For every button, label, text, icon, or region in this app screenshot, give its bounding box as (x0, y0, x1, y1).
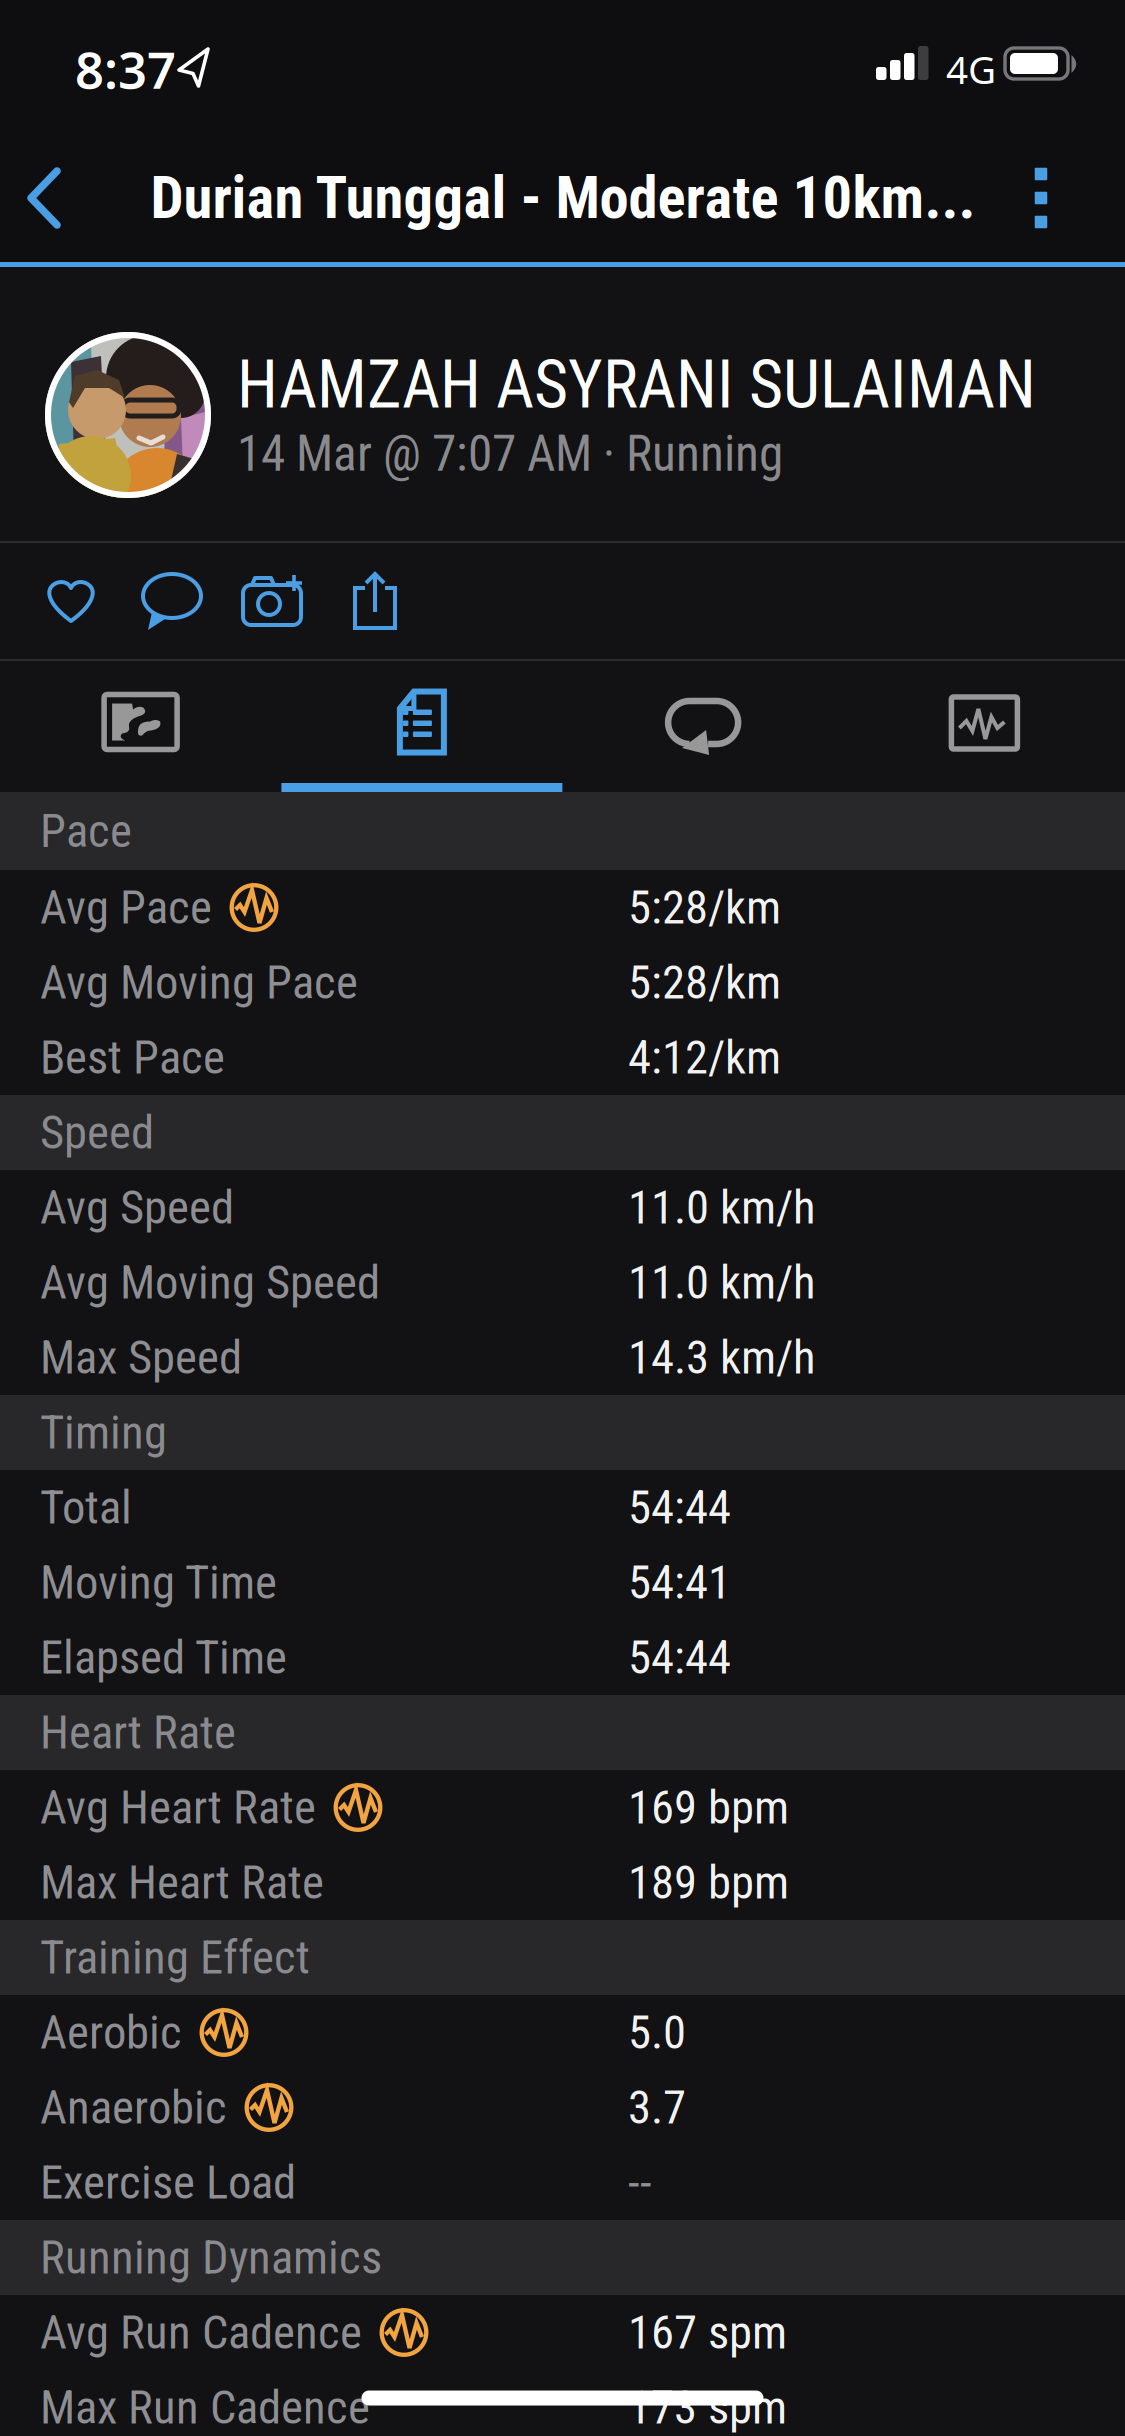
staticText: -- (628, 2155, 652, 2210)
staticText: Avg Heart Rate (40, 1780, 316, 1835)
staticText: Pace (40, 804, 132, 858)
staticText: Avg Moving Speed (40, 1255, 380, 1310)
button[interactable]: Like (23, 543, 118, 659)
staticText: 189 bpm (628, 1855, 789, 1910)
staticText: 54:41 (628, 1555, 731, 1610)
button[interactable]: Share (327, 543, 422, 659)
staticText: Heart Rate (40, 1705, 236, 1760)
staticText: Training Effect (40, 1930, 310, 1985)
staticText: 54:44 (628, 1630, 731, 1685)
staticText: Max Heart Rate (40, 1855, 324, 1910)
staticText: 11.0 km/h (628, 1255, 816, 1310)
staticText: 11.0 km/h (628, 1180, 816, 1235)
staticText: 54:44 (628, 1480, 731, 1535)
button[interactable]: Back (0, 132, 90, 262)
staticText: Anaerobic (40, 2080, 227, 2135)
staticText: Aerobic (40, 2005, 182, 2060)
staticText: Timing (40, 1405, 167, 1460)
staticText: 5.0 (628, 2005, 686, 2060)
staticText: Avg Speed (40, 1180, 234, 1235)
staticText: Total (40, 1480, 132, 1535)
button[interactable]: Stats (281, 661, 562, 783)
staticText: Avg Moving Pace (40, 955, 358, 1010)
staticText: 4G (946, 43, 996, 95)
staticText: Max Run Cadence (40, 2380, 370, 2435)
button[interactable]: Charts (844, 662, 1125, 784)
staticText: 167 spm (628, 2305, 787, 2360)
staticText: 5:28/km (628, 880, 781, 935)
staticText: 5:28/km (628, 955, 781, 1010)
staticText: Avg Pace (40, 880, 212, 935)
staticText: 173 spm (628, 2380, 787, 2435)
staticText: Running Dynamics (40, 2230, 382, 2285)
button[interactable]: Add photo (226, 543, 321, 659)
staticText: Exercise Load (40, 2155, 296, 2210)
staticText: 8:37 (75, 35, 176, 103)
staticText: Max Speed (40, 1330, 242, 1385)
staticText: Speed (40, 1105, 154, 1160)
staticText: Moving Time (40, 1555, 277, 1610)
staticText: Durian Tunggal - Moderate 10km... (150, 164, 975, 232)
button[interactable]: Comment (124, 543, 219, 659)
staticText: 14.3 km/h (628, 1330, 816, 1385)
button[interactable]: More options (1001, 133, 1081, 263)
staticText: 3.7 (628, 2080, 686, 2135)
staticText: 14 Mar @ 7:07 AM · Running (237, 425, 783, 483)
staticText: Elapsed Time (40, 1630, 287, 1685)
button[interactable]: Map (0, 661, 281, 783)
button[interactable]: Laps (563, 665, 844, 787)
staticText: Avg Run Cadence (40, 2305, 362, 2360)
staticText: 4:12/km (628, 1030, 781, 1085)
staticText: HAMZAH ASYRANI SULAIMAN (237, 346, 1036, 424)
staticText: 169 bpm (628, 1780, 789, 1835)
staticText: Best Pace (40, 1030, 225, 1085)
